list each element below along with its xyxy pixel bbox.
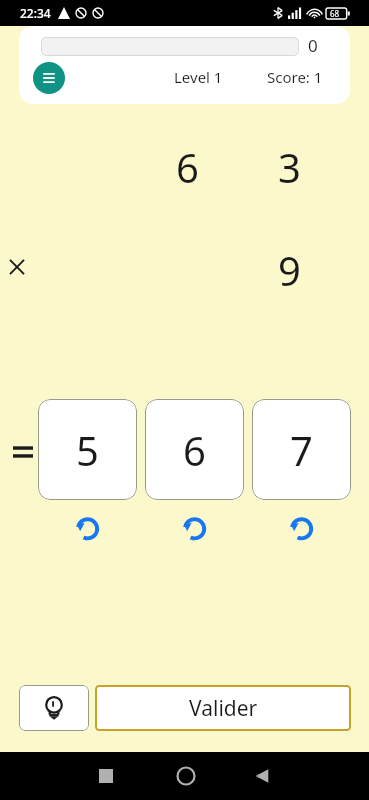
staticText: 6 xyxy=(183,423,206,477)
button[interactable]: Hint xyxy=(19,685,89,731)
staticText: 6 xyxy=(176,140,199,190)
button[interactable]: Recents xyxy=(98,768,114,784)
staticText: 22:34 xyxy=(20,5,51,21)
staticText: 68 xyxy=(330,8,340,19)
button[interactable]: Undo digit xyxy=(68,508,106,546)
button[interactable]: 5 xyxy=(38,399,137,500)
staticText: 5 xyxy=(76,423,99,477)
button[interactable]: Undo digit xyxy=(175,508,213,546)
button[interactable]: 7 xyxy=(252,399,351,500)
staticText: Valider xyxy=(189,694,258,723)
button[interactable]: Undo digit xyxy=(282,508,320,546)
button[interactable]: Level 1 xyxy=(174,67,223,87)
button[interactable]: 6 xyxy=(145,399,244,500)
staticText: 7 xyxy=(290,423,313,477)
staticText: 0 xyxy=(308,34,318,57)
button[interactable]: Home xyxy=(176,766,196,786)
button[interactable]: Back xyxy=(253,767,271,785)
button[interactable]: Valider xyxy=(95,685,351,731)
staticText: 9 xyxy=(278,243,301,293)
button[interactable]: Menu xyxy=(33,62,65,94)
button[interactable]: Score: 1 xyxy=(267,67,323,87)
staticText: 3 xyxy=(278,140,301,190)
